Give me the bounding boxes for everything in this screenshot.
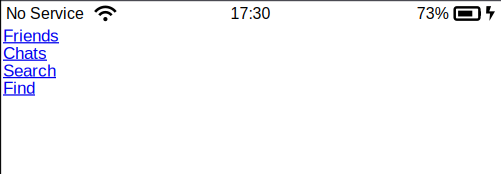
button[interactable]: Search: [3, 62, 56, 79]
staticText: 17:30: [230, 5, 270, 22]
staticText: No Service: [6, 5, 84, 22]
button[interactable]: Find: [3, 79, 35, 97]
staticText: 73%: [417, 5, 449, 22]
staticText: Find: [3, 78, 35, 97]
button[interactable]: Friends: [3, 27, 59, 44]
staticText: Search: [3, 61, 56, 80]
staticText: Chats: [3, 44, 47, 63]
staticText: Friends: [3, 26, 59, 45]
button[interactable]: Chats: [3, 44, 47, 62]
